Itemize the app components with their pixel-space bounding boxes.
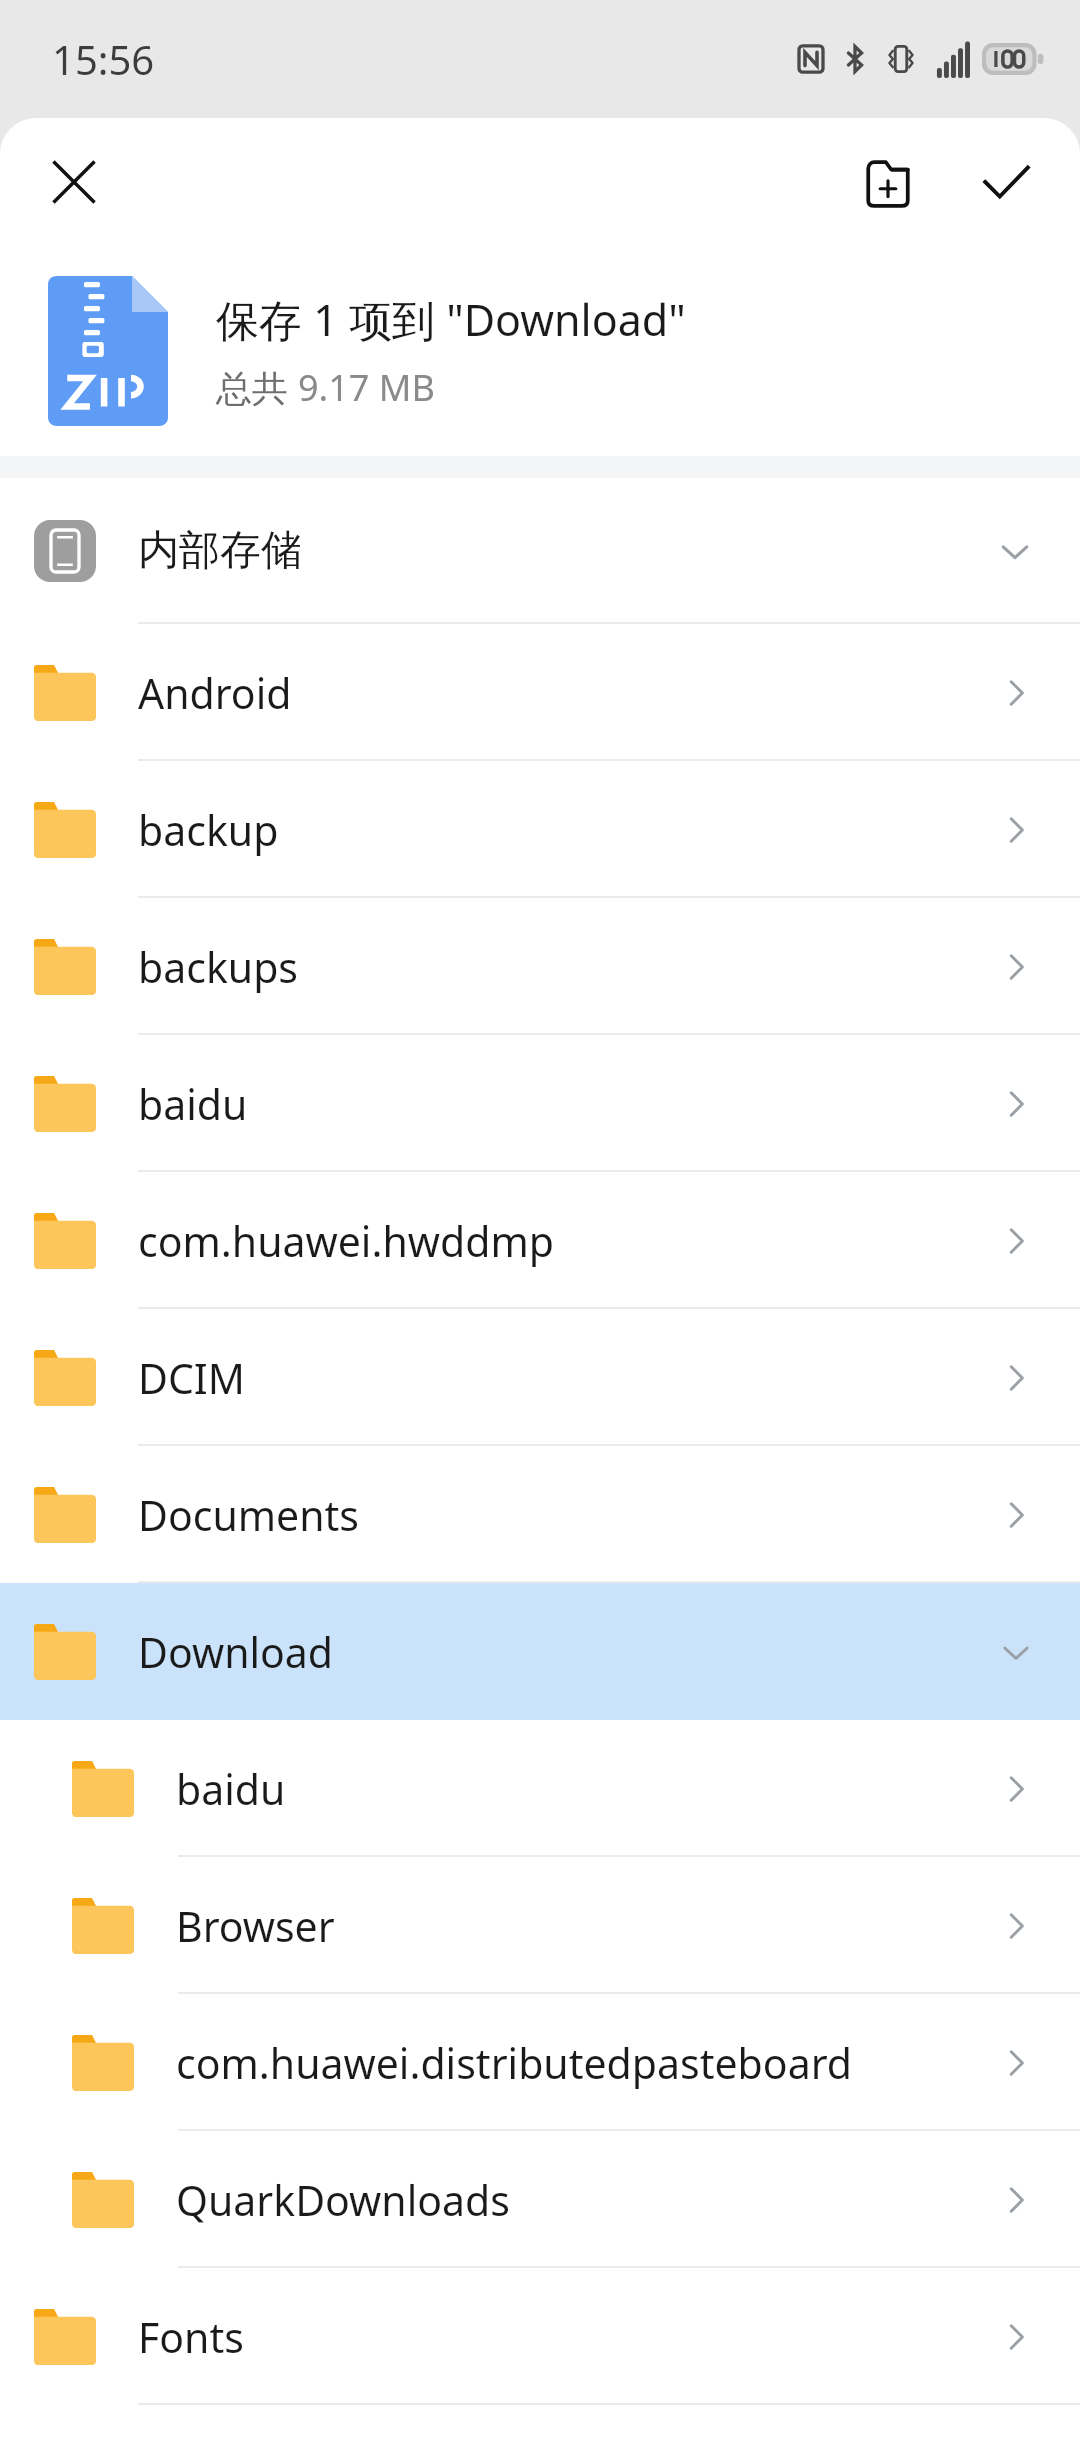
button[interactable]: Android bbox=[0, 624, 1080, 761]
button[interactable]: 内部存储 bbox=[0, 478, 1080, 624]
button[interactable]: baidu bbox=[0, 1035, 1080, 1172]
button[interactable]: Browser bbox=[0, 1857, 1080, 1994]
staticText: 9.17 MB bbox=[298, 363, 435, 412]
staticText: baidu bbox=[138, 1076, 984, 1132]
staticText: Fonts bbox=[138, 2309, 984, 2365]
button[interactable]: baidu bbox=[0, 1720, 1080, 1857]
staticText: backup bbox=[138, 802, 984, 858]
button[interactable]: Documents bbox=[0, 1446, 1080, 1583]
staticText: QuarkDownloads bbox=[176, 2172, 984, 2228]
button[interactable]: backups bbox=[0, 898, 1080, 1035]
staticText: 保存 1 项到 "Download" bbox=[216, 290, 686, 349]
button[interactable]: DCIM bbox=[0, 1309, 1080, 1446]
staticText: 总共 bbox=[216, 363, 298, 412]
button[interactable]: QuarkDownloads bbox=[0, 2131, 1080, 2268]
staticText: backups bbox=[138, 939, 984, 995]
staticText: com.huawei.distributedpasteboard bbox=[176, 2035, 984, 2091]
staticText: 内部存储 bbox=[138, 525, 994, 577]
staticText: Download bbox=[138, 1624, 984, 1680]
button[interactable]: Close bbox=[30, 138, 118, 226]
button[interactable]: Fonts bbox=[0, 2268, 1080, 2405]
staticText: Documents bbox=[138, 1487, 984, 1543]
button[interactable]: com.huawei.hwddmp bbox=[0, 1172, 1080, 1309]
button[interactable]: New folder bbox=[842, 136, 934, 228]
staticText: baidu bbox=[176, 1761, 984, 1817]
button[interactable]: backup bbox=[0, 761, 1080, 898]
button[interactable]: com.huawei.distributedpasteboard bbox=[0, 1994, 1080, 2131]
button[interactable]: Download bbox=[0, 1583, 1080, 1720]
staticText: 15:56 bbox=[52, 32, 155, 86]
staticText: com.huawei.hwddmp bbox=[138, 1213, 984, 1269]
staticText: Android bbox=[138, 665, 984, 721]
staticText: Browser bbox=[176, 1898, 984, 1954]
staticText: DCIM bbox=[138, 1350, 984, 1406]
button[interactable]: Confirm bbox=[960, 136, 1052, 228]
